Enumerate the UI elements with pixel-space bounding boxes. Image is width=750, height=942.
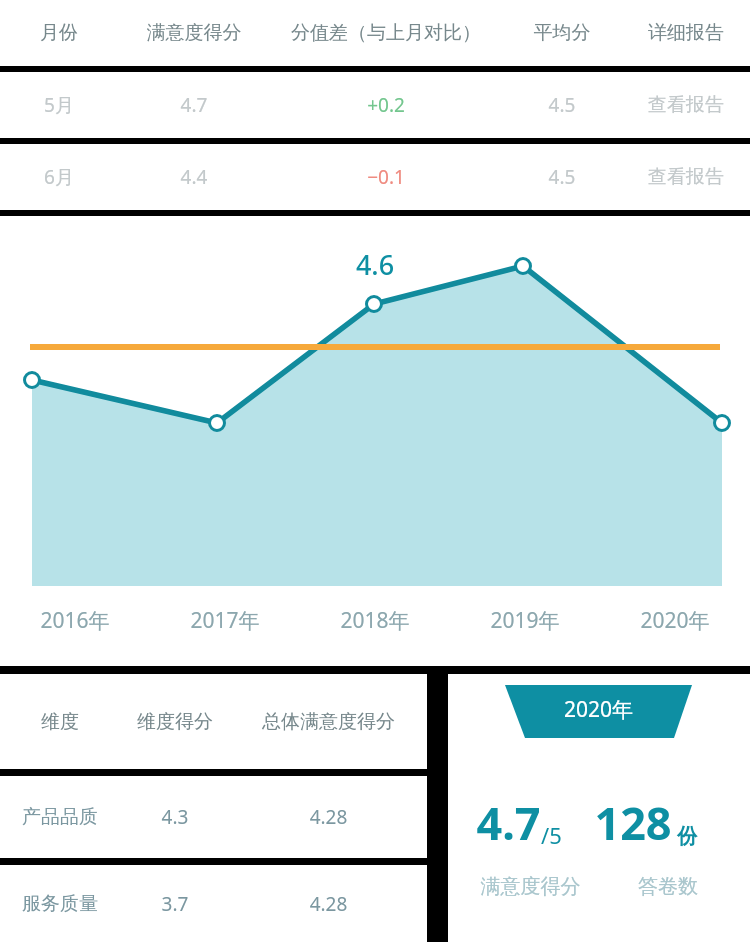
staticText: 份 bbox=[677, 824, 697, 849]
staticText: 答卷数 bbox=[613, 874, 723, 899]
staticText: −0.1 bbox=[270, 164, 502, 190]
staticText: 查看报告 bbox=[648, 165, 724, 189]
button[interactable]: 查看报告 bbox=[622, 72, 750, 138]
staticText: 4.7 bbox=[476, 792, 541, 853]
staticText: 维度 bbox=[0, 710, 120, 734]
button[interactable]: 5月 bbox=[0, 72, 750, 138]
staticText: 5月 bbox=[0, 92, 118, 118]
button[interactable]: 查看报告 bbox=[622, 144, 750, 210]
staticText: 查看报告 bbox=[648, 93, 724, 117]
staticText: 满意度得分 bbox=[118, 21, 270, 45]
staticText: 满意度得分 bbox=[448, 874, 613, 899]
staticText: 2018年 bbox=[300, 606, 450, 635]
button[interactable]: 6月 bbox=[0, 144, 750, 210]
staticText: 3.7 bbox=[120, 891, 230, 917]
staticText: 2020年 bbox=[600, 606, 750, 635]
staticText: 2016年 bbox=[0, 606, 150, 635]
staticText: 服务质量 bbox=[0, 892, 120, 916]
staticText: 4.3 bbox=[120, 804, 230, 830]
staticText: 总体满意度得分 bbox=[230, 710, 427, 734]
staticText: 4.6 bbox=[341, 246, 409, 283]
staticText: +0.2 bbox=[270, 92, 502, 118]
staticText: 6月 bbox=[0, 164, 118, 190]
staticText: 4.28 bbox=[230, 804, 427, 830]
staticText: 详细报告 bbox=[622, 21, 750, 45]
staticText: 平均分 bbox=[502, 21, 622, 45]
staticText: 4.7 bbox=[118, 92, 270, 118]
staticText: 2020年 bbox=[505, 695, 692, 724]
staticText: 4.5 bbox=[502, 92, 622, 118]
staticText: 月份 bbox=[0, 21, 118, 45]
staticText: 分值差（与上月对比） bbox=[270, 21, 502, 45]
staticText: 产品品质 bbox=[0, 805, 120, 829]
staticText: 2019年 bbox=[450, 606, 600, 635]
staticText: 128 bbox=[594, 792, 672, 853]
staticText: /5 bbox=[541, 820, 562, 850]
staticText: 2017年 bbox=[150, 606, 300, 635]
staticText: 4.4 bbox=[118, 164, 270, 190]
staticText: 4.28 bbox=[230, 891, 427, 917]
staticText: 4.5 bbox=[502, 164, 622, 190]
button[interactable]: 产品品质 bbox=[0, 776, 427, 858]
staticText: 维度得分 bbox=[120, 710, 230, 734]
button[interactable]: 服务质量 bbox=[0, 865, 427, 942]
